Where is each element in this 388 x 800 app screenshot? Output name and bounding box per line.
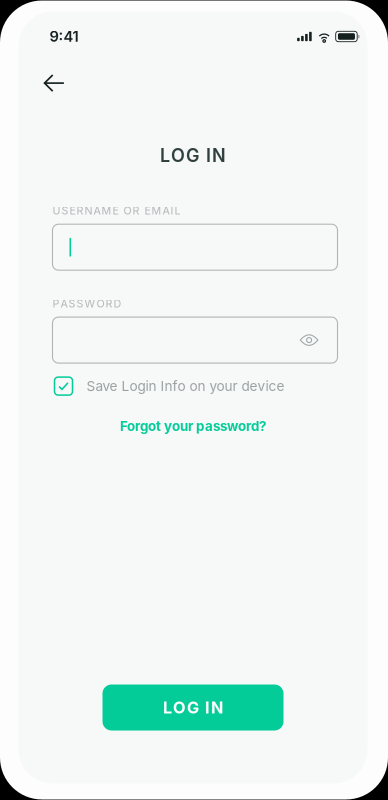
staticText: L O G I N [160, 144, 226, 166]
button[interactable]: Show password [288, 318, 337, 362]
button[interactable]: Back [34, 63, 73, 102]
staticText: Save Login Info on your device [86, 378, 284, 394]
staticText: L O G I N [163, 698, 223, 717]
staticText: Forgot your password? [120, 418, 266, 434]
staticText: P A S S W O R D [52, 297, 121, 310]
button[interactable]: L O G I N [102, 684, 283, 730]
staticText: U S E R N A M E O R E M A I L [52, 204, 180, 217]
button[interactable]: Save Login Info on your device [54, 374, 284, 398]
staticText: 9:41 [49, 28, 78, 45]
button[interactable]: Forgot your password? [110, 412, 276, 440]
